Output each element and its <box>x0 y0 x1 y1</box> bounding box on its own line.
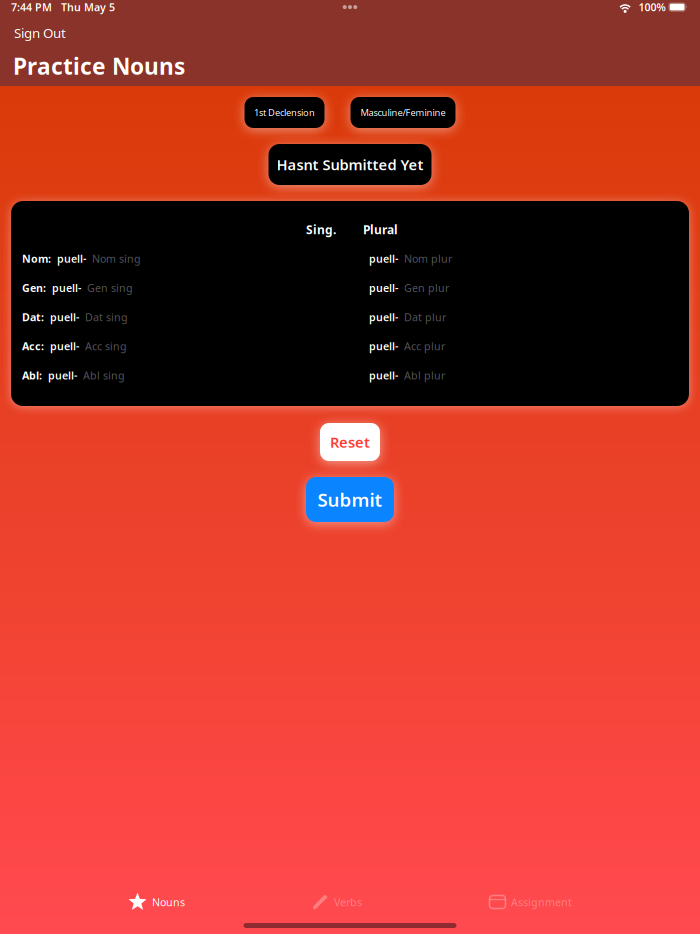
staticText: Verbs <box>334 895 362 909</box>
staticText: Acc plur <box>404 339 445 353</box>
staticText: puell- <box>369 251 398 266</box>
staticText: Masculine/Feminine <box>360 106 445 119</box>
staticText: Dat: <box>22 310 44 324</box>
staticText: Plural <box>363 221 398 237</box>
staticText: Sing. <box>306 221 336 237</box>
button[interactable]: 1st Declension <box>244 97 324 128</box>
staticText: puell- <box>57 251 86 266</box>
button[interactable]: Masculine/Feminine <box>350 97 455 128</box>
staticText: puell- <box>369 310 398 324</box>
staticText: Acc sing <box>85 339 127 353</box>
staticText: Acc: <box>22 339 44 353</box>
staticText: Gen: <box>22 281 46 295</box>
staticText: puell- <box>50 339 79 353</box>
staticText: Nouns <box>152 895 185 909</box>
staticText: Abl plur <box>404 368 445 382</box>
staticText: Nom plur <box>404 251 452 266</box>
staticText: Dat sing <box>85 310 128 324</box>
staticText: puell- <box>369 368 398 382</box>
button[interactable]: Submit <box>306 477 394 522</box>
staticText: puell- <box>369 339 398 353</box>
staticText: Abl: <box>22 368 42 382</box>
staticText: puell- <box>52 281 81 295</box>
staticText: Hasnt Submitted Yet <box>276 155 423 174</box>
staticText: puell- <box>50 310 79 324</box>
staticText: Assignment <box>511 895 572 909</box>
staticText: Reset <box>330 432 370 452</box>
staticText: Dat plur <box>404 310 446 324</box>
staticText: Gen plur <box>404 281 449 295</box>
staticText: Nom sing <box>92 251 141 266</box>
staticText: 100% <box>633 0 666 14</box>
staticText: puell- <box>48 368 77 382</box>
staticText: Practice Nouns <box>13 51 185 81</box>
staticText: Abl sing <box>83 368 125 382</box>
staticText: Nom: <box>22 251 51 266</box>
button[interactable]: Assignment <box>489 889 572 915</box>
staticText: 1st Declension <box>254 106 315 119</box>
staticText: Gen sing <box>87 281 133 295</box>
button[interactable]: Reset <box>320 423 380 461</box>
staticText: Thu May 5 <box>52 0 115 14</box>
staticText: puell- <box>369 281 398 295</box>
button[interactable]: Nouns <box>128 889 185 915</box>
button[interactable]: Hasnt Submitted Yet <box>268 144 431 185</box>
staticText: 7:44 PM <box>11 0 52 14</box>
staticText: Sign Out <box>14 24 66 42</box>
button[interactable]: Verbs <box>312 889 362 915</box>
button[interactable]: Sign Out <box>0 14 76 49</box>
staticText: Submit <box>317 487 382 512</box>
